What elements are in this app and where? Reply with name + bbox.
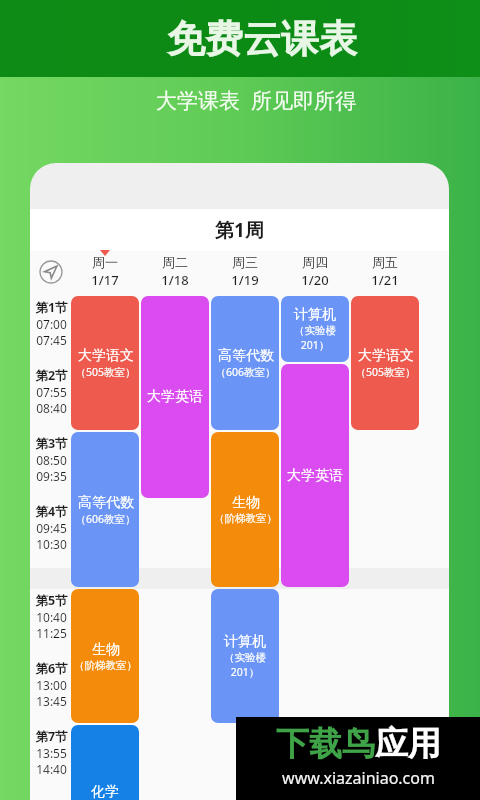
staticText: 大学语文 bbox=[78, 347, 134, 365]
button[interactable]: 第1周 bbox=[30, 209, 449, 251]
button[interactable]: 生物 bbox=[211, 432, 279, 587]
staticText: 免费云课表 bbox=[167, 15, 357, 63]
staticText: 应用 bbox=[375, 723, 441, 765]
staticText: 10:40 bbox=[36, 609, 67, 625]
staticText: 09:35 bbox=[36, 468, 67, 484]
button[interactable]: 周一 bbox=[70, 251, 140, 293]
button[interactable]: 高等代数 bbox=[211, 296, 279, 430]
button[interactable]: 大学英语 bbox=[141, 296, 209, 498]
staticText: 11:25 bbox=[36, 625, 67, 641]
button[interactable]: 计算机 bbox=[281, 296, 349, 362]
staticText: 1/21 bbox=[371, 271, 399, 289]
staticText: 周四 bbox=[302, 254, 328, 270]
staticText: 大学英语 bbox=[147, 388, 203, 406]
staticText: 计算机 bbox=[224, 633, 266, 651]
staticText: 07:00 bbox=[36, 316, 67, 332]
staticText: 周一 bbox=[92, 254, 118, 270]
button[interactable]: 周二 bbox=[140, 251, 210, 293]
staticText: （阶梯教室） bbox=[214, 512, 277, 525]
staticText: （606教室） bbox=[75, 512, 136, 526]
staticText: 大学英语 bbox=[287, 467, 343, 485]
staticText: 第1节 bbox=[35, 299, 68, 316]
staticText: 第2节 bbox=[35, 367, 68, 384]
staticText: 第7节 bbox=[35, 728, 68, 745]
staticText: 周三 bbox=[232, 254, 258, 270]
staticText: 1/19 bbox=[231, 271, 259, 289]
staticText: 第5节 bbox=[35, 592, 68, 609]
staticText: 1/20 bbox=[301, 271, 329, 289]
button[interactable]: 周三 bbox=[210, 251, 280, 293]
button[interactable]: 化学 bbox=[71, 725, 139, 800]
button[interactable]: 周五 bbox=[350, 251, 420, 293]
staticText: 07:45 bbox=[36, 332, 67, 348]
staticText: 大学课表 所见即所得 bbox=[156, 86, 356, 115]
staticText: 14:40 bbox=[36, 761, 67, 777]
staticText: 第6节 bbox=[35, 660, 68, 677]
button[interactable]: 高等代数 bbox=[71, 432, 139, 587]
staticText: 高等代数 bbox=[78, 494, 134, 512]
staticText: （实验楼201） bbox=[211, 651, 279, 679]
staticText: （实验楼201） bbox=[281, 324, 349, 352]
staticText: （505教室） bbox=[355, 365, 416, 379]
button[interactable]: Locate today bbox=[30, 251, 72, 293]
button[interactable]: 大学语文 bbox=[71, 296, 139, 430]
staticText: 13:00 bbox=[36, 677, 67, 693]
staticText: 1/18 bbox=[161, 271, 189, 289]
button[interactable]: 周四 bbox=[280, 251, 350, 293]
button[interactable]: 计算机 bbox=[211, 589, 279, 723]
staticText: 生物 bbox=[232, 494, 260, 512]
staticText: 高等代数 bbox=[218, 347, 274, 365]
button[interactable]: 大学语文 bbox=[351, 296, 419, 430]
staticText: 07:55 bbox=[36, 384, 67, 400]
staticText: 第1周 bbox=[215, 217, 264, 243]
button[interactable]: 大学英语 bbox=[281, 364, 349, 587]
staticText: 09:45 bbox=[36, 520, 67, 536]
button[interactable]: 生物 bbox=[71, 589, 139, 723]
staticText: （阶梯教室） bbox=[74, 659, 137, 672]
staticText: 周二 bbox=[162, 254, 188, 270]
staticText: 第4节 bbox=[35, 503, 68, 520]
staticText: 大学语文 bbox=[358, 347, 414, 365]
staticText: （606教室） bbox=[215, 365, 276, 379]
staticText: www.xiazainiao.com bbox=[282, 767, 435, 789]
staticText: 08:50 bbox=[36, 452, 67, 468]
staticText: 计算机 bbox=[294, 306, 336, 324]
staticText: 下载鸟 bbox=[276, 723, 375, 765]
staticText: （505教室） bbox=[75, 365, 136, 379]
staticText: 13:55 bbox=[36, 745, 67, 761]
staticText: 1/17 bbox=[91, 271, 119, 289]
staticText: 08:40 bbox=[36, 400, 67, 416]
staticText: 生物 bbox=[92, 641, 120, 659]
staticText: 10:30 bbox=[36, 536, 67, 552]
staticText: 周五 bbox=[372, 254, 398, 270]
staticText: 化学 bbox=[91, 783, 119, 800]
staticText: 第3节 bbox=[35, 435, 68, 452]
staticText: 13:45 bbox=[36, 693, 67, 709]
